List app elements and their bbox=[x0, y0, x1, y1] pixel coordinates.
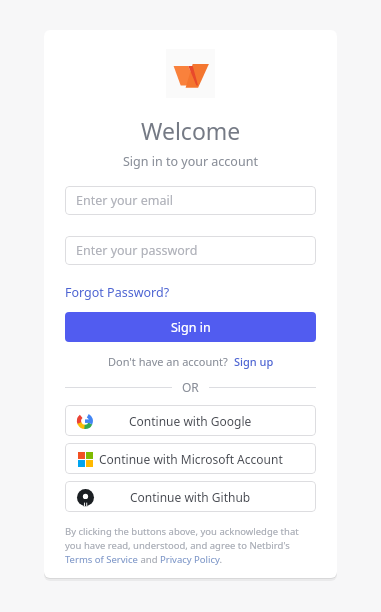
button[interactable]: Enter your email bbox=[65, 186, 316, 215]
staticText: Continue with Google bbox=[129, 413, 252, 429]
staticText: Sign up bbox=[234, 354, 274, 369]
button[interactable]: Microsoft bbox=[65, 443, 316, 474]
staticText: Enter your email bbox=[76, 192, 173, 209]
staticText: Sign in to your account bbox=[123, 153, 258, 170]
other: Github bbox=[77, 489, 94, 506]
button[interactable]: Forgot Password? bbox=[65, 282, 170, 303]
other: Microsoft bbox=[78, 452, 93, 467]
staticText: Enter your password bbox=[76, 242, 198, 259]
staticText: Continue with Github bbox=[130, 489, 251, 505]
button[interactable]: Github bbox=[65, 481, 316, 512]
staticText: By clicking the buttons above, you ackno… bbox=[65, 525, 316, 566]
staticText: OR bbox=[182, 379, 199, 395]
staticText: Sign in bbox=[171, 319, 211, 336]
staticText: Forgot Password? bbox=[65, 284, 170, 301]
button[interactable]: Sign up bbox=[234, 354, 274, 369]
staticText: Welcome bbox=[141, 115, 241, 146]
other: Google bbox=[77, 413, 93, 429]
staticText: Continue with Microsoft Account bbox=[99, 451, 283, 467]
button[interactable]: Sign in bbox=[65, 312, 316, 342]
button[interactable]: Google bbox=[65, 405, 316, 436]
button[interactable]: Enter your password bbox=[65, 236, 316, 265]
staticText: Don't have an account? bbox=[108, 354, 228, 369]
